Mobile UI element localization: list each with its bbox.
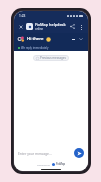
staticText: online — [35, 27, 44, 31]
staticText: Enter your message... — [18, 151, 52, 155]
staticText: Hi there — [27, 36, 44, 42]
button[interactable]: Collapse — [77, 35, 85, 43]
staticText: 1:23 — [19, 14, 26, 18]
staticText: We reply immediately — [21, 46, 49, 50]
button[interactable]: Close — [17, 23, 25, 31]
button[interactable]: Minimize — [69, 35, 77, 43]
button[interactable]: More options — [77, 23, 85, 31]
staticText: FixMap helpdesk — [35, 22, 66, 27]
button[interactable]: Previous messages — [33, 55, 69, 61]
button[interactable]: Send — [74, 148, 84, 158]
staticText: Powered by — [37, 163, 51, 166]
staticText: Previous messages — [40, 56, 66, 60]
staticText: FixMap — [56, 162, 66, 166]
button[interactable]: Enter your message... — [18, 151, 74, 155]
button[interactable]: Hi there — [17, 33, 85, 45]
button[interactable]: Share — [68, 22, 77, 31]
